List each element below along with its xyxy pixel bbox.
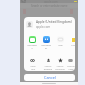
staticText: Add to Favourites (55, 65, 65, 71)
button[interactable]: Apple (United Kingdom) (26, 17, 73, 31)
staticText: Cancel (44, 75, 56, 80)
button[interactable]: Cancel (24, 74, 75, 81)
button[interactable]: Add to Favourites (55, 58, 65, 71)
button[interactable]: Add to Reading List (43, 58, 53, 71)
staticText: Copy Link (30, 65, 36, 71)
button[interactable]: Messages (27, 36, 37, 50)
staticText: 9:41 (21, 0, 27, 3)
staticText: Messages (27, 44, 37, 50)
button[interactable]: Mail (55, 36, 65, 47)
staticText: Apple (United Kingdom) (36, 20, 72, 24)
button[interactable]: Find on Page (66, 58, 75, 71)
button[interactable]: Messenger (41, 36, 51, 50)
button[interactable]: Notes (69, 36, 75, 47)
button[interactable]: Copy Link (28, 58, 37, 71)
staticText: Messenger (41, 44, 51, 50)
staticText: Mail (58, 44, 63, 47)
staticText: Add to Reading List (43, 65, 53, 71)
staticText: Notes (71, 44, 75, 47)
staticText: Search or enter website name (31, 4, 68, 8)
staticText: Find on Page (67, 65, 75, 71)
staticText: apple.com (36, 25, 51, 29)
